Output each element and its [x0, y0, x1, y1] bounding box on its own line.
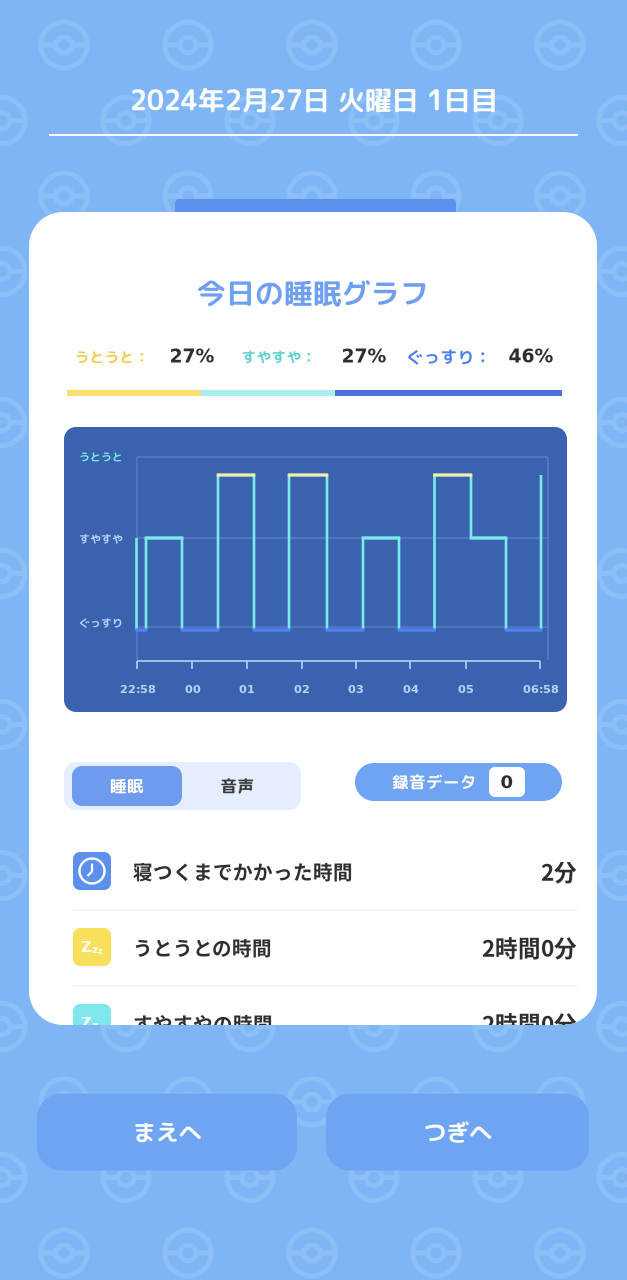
staticText: 2時間0分 [482, 1007, 577, 1039]
staticText: Z [81, 1014, 92, 1032]
staticText: 寝つくまでかかった時間 [133, 857, 353, 885]
staticText: 46% [508, 345, 553, 367]
staticText: z [92, 1019, 98, 1032]
staticText: 2024年2月27日 火曜日 1日目 [129, 81, 497, 119]
staticText: 06:58 [523, 682, 559, 696]
button[interactable]: 睡眠 [72, 766, 182, 806]
staticText: つぎへ [423, 1116, 492, 1148]
staticText: うとうと [79, 449, 123, 464]
staticText: まえへ [132, 1116, 201, 1148]
staticText: 今日の睡眠グラフ [197, 273, 429, 313]
staticText: 2時間0分 [482, 931, 577, 963]
button[interactable]: 寝つくまでかかった時間 [73, 852, 577, 890]
button[interactable]: 録音データ [355, 763, 562, 801]
staticText: z [98, 946, 103, 956]
staticText: 録音データ [392, 770, 477, 793]
staticText: 00 [185, 682, 201, 696]
staticText: 05 [458, 682, 474, 696]
staticText: 0 [500, 771, 513, 792]
staticText: すやすや： [241, 347, 316, 367]
staticText: 02 [294, 682, 310, 696]
staticText: 音声 [220, 774, 254, 797]
staticText: 01 [239, 682, 255, 696]
button[interactable]: Z [73, 928, 577, 966]
staticText: z [98, 1022, 103, 1032]
button[interactable]: まえへ [37, 1093, 297, 1170]
staticText: z [92, 943, 98, 956]
button[interactable]: Z [73, 1004, 577, 1042]
staticText: 04 [403, 682, 419, 696]
staticText: 27% [169, 345, 214, 367]
staticText: ぐっすり [79, 615, 123, 630]
staticText: Z [81, 938, 92, 956]
staticText: 2分 [541, 855, 577, 887]
staticText: うとうと： [74, 347, 149, 367]
staticText: すやすや [79, 531, 123, 546]
staticText: 03 [348, 682, 364, 696]
button[interactable]: 音声 [182, 766, 293, 806]
staticText: すやすやの時間 [133, 1009, 273, 1037]
staticText: 22:58 [120, 682, 156, 696]
button[interactable]: つぎへ [326, 1093, 589, 1170]
staticText: うとうとの時間 [133, 933, 272, 961]
staticText: 27% [341, 345, 386, 367]
staticText: ぐっすり： [406, 345, 491, 368]
staticText: 睡眠 [110, 774, 144, 797]
